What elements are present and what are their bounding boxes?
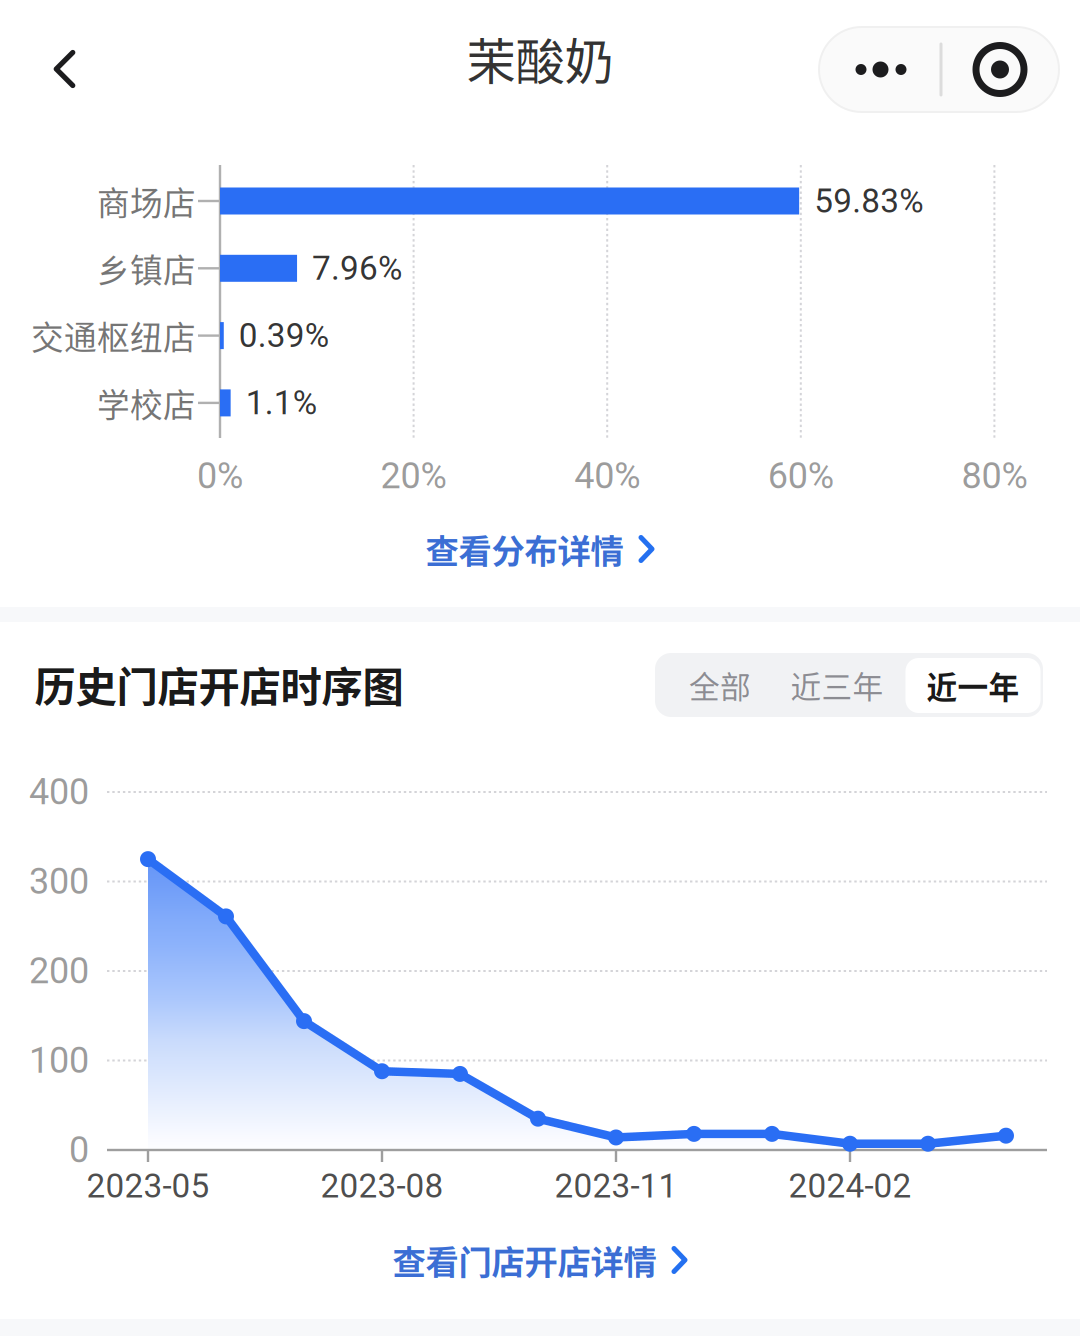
- button[interactable]: 查看门店开店详情: [260, 1216, 820, 1304]
- staticText: 0: [69, 1129, 89, 1171]
- staticText: 茉酸奶: [466, 22, 613, 94]
- staticText: 59.83%: [814, 181, 923, 221]
- staticText: 60%: [768, 455, 834, 497]
- staticText: 全部: [689, 663, 751, 707]
- staticText: 200: [29, 950, 89, 992]
- staticText: 20%: [381, 455, 447, 497]
- button[interactable]: 查看分布详情: [260, 505, 820, 593]
- staticText: 查看门店开店详情: [392, 1236, 656, 1284]
- staticText: 2023-08: [320, 1166, 443, 1206]
- staticText: 历史门店开店时序图: [34, 654, 403, 714]
- staticText: 乡镇店: [97, 245, 196, 292]
- button[interactable]: 更多: [819, 27, 1059, 112]
- staticText: 商场店: [97, 177, 196, 225]
- staticText: 学校店: [97, 379, 196, 426]
- button[interactable]: 近三年: [778, 653, 896, 717]
- staticText: 1.1%: [246, 383, 317, 422]
- button[interactable]: 返回: [16, 21, 112, 117]
- staticText: 100: [29, 1039, 89, 1082]
- staticText: 近一年: [926, 663, 1019, 708]
- staticText: 2024-02: [788, 1166, 911, 1206]
- staticText: 2023-11: [554, 1166, 677, 1206]
- button[interactable]: 全部: [668, 653, 772, 717]
- staticText: 0%: [197, 455, 243, 497]
- button[interactable]: 近一年: [905, 658, 1040, 713]
- staticText: 7.96%: [312, 249, 402, 288]
- staticText: 300: [29, 860, 89, 903]
- staticText: 400: [29, 771, 89, 813]
- staticText: 80%: [961, 455, 1027, 497]
- staticText: 2023-05: [86, 1166, 209, 1206]
- staticText: 交通枢纽店: [31, 312, 196, 359]
- staticText: 近三年: [790, 663, 883, 707]
- staticText: 查看分布详情: [425, 525, 623, 573]
- staticText: 40%: [574, 455, 640, 497]
- staticText: 0.39%: [239, 316, 329, 355]
